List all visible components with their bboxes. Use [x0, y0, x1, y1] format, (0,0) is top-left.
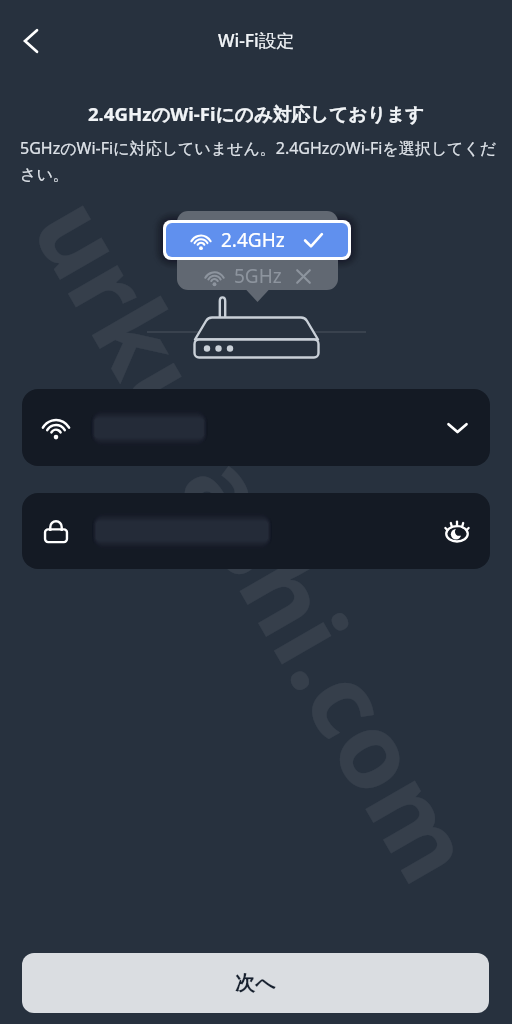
button[interactable]: Choose network	[22, 389, 490, 466]
staticText: urkurashi.com	[3, 172, 510, 907]
button[interactable]: Show password	[22, 493, 490, 569]
staticText: 2.4GHz	[221, 227, 285, 253]
staticText: 5GHz	[234, 263, 282, 289]
staticText: 次へ	[235, 971, 276, 996]
staticText: 5GHzのWi-Fiに対応していません。2.4GHzのWi-Fiを選択してくださ…	[20, 137, 498, 185]
button[interactable]: 2.4GHz	[166, 223, 348, 257]
staticText: 2.4GHzのWi-Fiにのみ対応しております	[14, 101, 498, 126]
button[interactable]: 5GHz	[177, 261, 338, 291]
button[interactable]: Choose network	[424, 389, 490, 466]
button[interactable]: Show password	[424, 493, 490, 569]
staticText: Wi-Fi設定	[218, 28, 294, 52]
button[interactable]: 次へ	[22, 953, 489, 1013]
button[interactable]: Back	[7, 17, 55, 65]
